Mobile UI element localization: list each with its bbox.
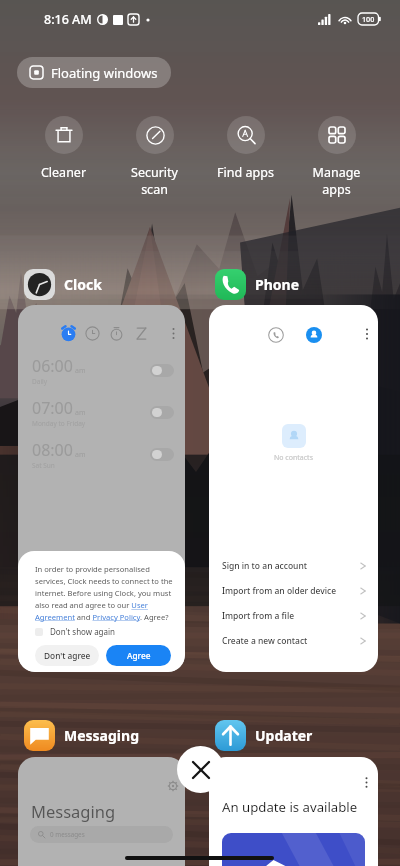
staticText: Agree [127,650,151,661]
button[interactable]: Don't show again [35,626,116,637]
button[interactable]: Sign in to an account [222,553,367,578]
staticText: Import from a file [222,610,295,622]
button[interactable]: Agree [106,645,171,666]
button[interactable]: No contacts [209,305,378,672]
button[interactable]: Import from an older device [222,578,367,603]
button[interactable]: 06:00 [18,305,185,672]
staticText: Find apps [200,164,291,181]
staticText: Floating windows [51,64,158,82]
staticText: Monday to Friday [32,419,86,428]
staticText: Cleaner [18,164,109,181]
button[interactable]: Security scan [109,116,200,197]
button[interactable]: Cleaner [18,116,109,181]
staticText: Security scan [109,164,200,197]
button[interactable]: Find apps [200,116,291,181]
staticText: Don't show again [50,626,116,637]
staticText: am [75,366,86,376]
staticText: Manage apps [291,164,382,197]
button[interactable]: Updater [209,718,319,753]
staticText: Sat Sun [32,461,55,470]
button[interactable]: Create a new contact [222,628,367,653]
button[interactable]: Messaging [18,757,185,866]
button[interactable]: Messaging [18,718,145,753]
staticText: No contacts [274,453,313,463]
staticText: Phone [255,275,300,294]
staticText: Messaging [64,726,139,745]
staticText: 0 messages [50,830,85,839]
staticText: Clock [64,275,102,294]
button[interactable]: Close all apps [177,746,224,793]
staticText: Messaging [31,800,116,822]
staticText: 8:16 AM [44,11,92,28]
staticText: Sign in to an account [222,560,307,572]
staticText: In order to provide personalised service… [35,564,173,622]
staticText: 08:00 [32,439,73,461]
button[interactable]: An update is available [209,757,378,866]
staticText: 07:00 [32,397,73,419]
staticText: Daily [32,377,48,386]
staticText: am [75,450,86,460]
button[interactable]: Import from a file [222,603,367,628]
button[interactable]: Floating windows [17,57,171,88]
button[interactable]: Don't agree [35,645,99,666]
button[interactable]: Phone [209,267,306,302]
button[interactable]: Manage apps [291,116,382,197]
staticText: Don't agree [44,650,91,661]
button[interactable]: Clock [18,267,108,302]
staticText: 100 [362,14,375,24]
staticText: am [75,408,86,418]
staticText: Updater [255,726,313,745]
staticText: 06:00 [32,355,73,377]
staticText: An update is available [222,798,358,816]
staticText: Create a new contact [222,635,308,647]
staticText: Import from an older device [222,585,337,597]
